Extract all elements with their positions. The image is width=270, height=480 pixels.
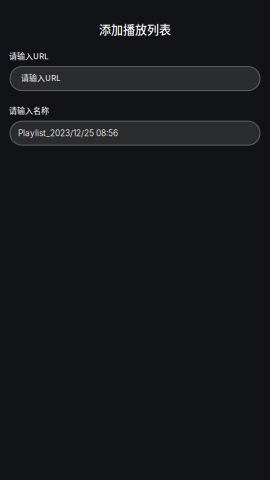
staticText: 请输入名称: [9, 105, 49, 116]
staticText: 请输入URL: [9, 50, 48, 62]
staticText: 添加播放列表: [99, 21, 171, 38]
staticText: Playlist_2023/12/25 08:56: [18, 128, 118, 138]
button[interactable]: 请输入URL: [0, 67, 270, 91]
staticText: 请输入URL: [21, 72, 60, 83]
button[interactable]: Playlist_2023/12/25 08:56: [0, 121, 270, 145]
